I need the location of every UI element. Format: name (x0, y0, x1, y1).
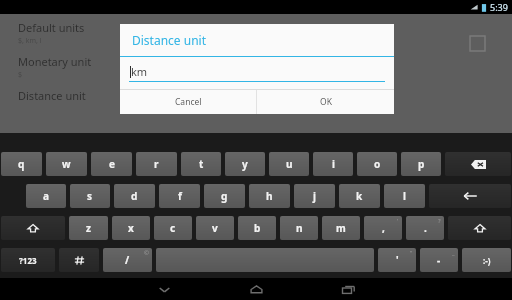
staticText: p (418, 157, 425, 171)
staticText: v (212, 221, 218, 235)
staticText: u (286, 157, 293, 171)
button[interactable]: :-) (462, 248, 511, 272)
staticText: t (199, 157, 204, 171)
staticText: © (144, 249, 149, 257)
staticText: , (382, 221, 385, 235)
staticText: x (128, 221, 134, 235)
staticText: c (170, 221, 176, 235)
button[interactable]: Shift (448, 216, 511, 240)
button[interactable]: Default units (0, 16, 512, 50)
button[interactable]: p (401, 152, 441, 176)
staticText: e (109, 157, 115, 171)
button[interactable]: v (196, 216, 234, 240)
staticText: h (266, 189, 273, 203)
button[interactable]: Monetary unit (0, 50, 512, 84)
button[interactable]: u (269, 152, 309, 176)
staticText: l (403, 189, 406, 203)
staticText: :-) (483, 255, 491, 266)
button[interactable]: b (238, 216, 276, 240)
staticText: - (437, 253, 441, 267)
button[interactable]: g (204, 184, 245, 208)
staticText: ?123 (19, 255, 37, 266)
staticText: k (356, 189, 363, 203)
staticText: f (178, 189, 182, 203)
button[interactable]: s (70, 184, 110, 208)
button[interactable]: . (406, 216, 444, 240)
button[interactable]: c (154, 216, 192, 240)
staticText: _ (452, 249, 455, 257)
staticText: ' (397, 217, 399, 225)
button[interactable]: i (313, 152, 353, 176)
button[interactable]: Home (231, 278, 281, 300)
button[interactable]: x (112, 216, 150, 240)
staticText: km (131, 64, 148, 79)
staticText: r (154, 157, 159, 171)
button[interactable]: / (103, 248, 152, 272)
staticText: s (87, 189, 93, 203)
staticText: Monetary unit (18, 54, 92, 69)
staticText: $ (18, 70, 23, 80)
button[interactable]: , (364, 216, 402, 240)
staticText: m (336, 221, 346, 235)
staticText: n (296, 221, 303, 235)
staticText: / (125, 253, 130, 267)
staticText: z (86, 221, 91, 235)
button[interactable]: a (26, 184, 66, 208)
staticText: ' (396, 253, 399, 267)
button[interactable]: Enter (429, 184, 511, 208)
staticText: Default units (18, 20, 85, 35)
button[interactable]: ' (378, 248, 416, 272)
button[interactable]: Distance unit (0, 84, 512, 115)
staticText: $, km, l (18, 36, 42, 46)
staticText: OK (320, 96, 332, 108)
button[interactable]: t (181, 152, 221, 176)
button[interactable]: k (339, 184, 380, 208)
button[interactable]: h (249, 184, 290, 208)
button[interactable]: l (384, 184, 425, 208)
staticText: y (242, 157, 248, 171)
button[interactable]: r (136, 152, 177, 176)
button[interactable]: j (294, 184, 335, 208)
button[interactable]: n (280, 216, 318, 240)
button[interactable]: Hide keyboard (139, 278, 189, 300)
button[interactable]: e (91, 152, 132, 176)
staticText: b (254, 221, 261, 235)
button[interactable]: Change language (59, 248, 99, 272)
staticText: i (332, 157, 335, 171)
button[interactable]: OK (257, 90, 394, 114)
button[interactable]: z (69, 216, 108, 240)
staticText: j (313, 189, 316, 203)
button[interactable]: m (322, 216, 360, 240)
staticText: a (43, 189, 49, 203)
staticText: d (131, 189, 138, 203)
staticText: Cancel (175, 96, 202, 108)
button[interactable]: d (114, 184, 155, 208)
button[interactable]: km (120, 57, 394, 89)
staticText: Distance unit (18, 88, 86, 103)
button[interactable]: - (420, 248, 458, 272)
button[interactable]: ?123 (1, 248, 55, 272)
staticText: . (424, 221, 427, 235)
staticText: w (62, 157, 71, 171)
button[interactable]: Cancel (120, 90, 256, 114)
button[interactable] (156, 248, 374, 272)
staticText: q (18, 157, 25, 171)
button[interactable]: f (159, 184, 200, 208)
staticText: o (374, 157, 381, 171)
staticText: " (410, 249, 413, 257)
staticText: ? (438, 217, 441, 225)
staticText: g (221, 189, 228, 203)
staticText: 5:39 (490, 1, 508, 13)
button[interactable]: Recent apps (323, 278, 373, 300)
button[interactable]: q (1, 152, 42, 176)
staticText: Distance unit (132, 32, 206, 48)
button[interactable]: Checkbox (470, 36, 485, 51)
button[interactable]: Backspace (445, 152, 511, 176)
button[interactable]: Shift (1, 216, 65, 240)
button[interactable]: y (225, 152, 265, 176)
button[interactable]: o (357, 152, 397, 176)
button[interactable]: w (46, 152, 87, 176)
